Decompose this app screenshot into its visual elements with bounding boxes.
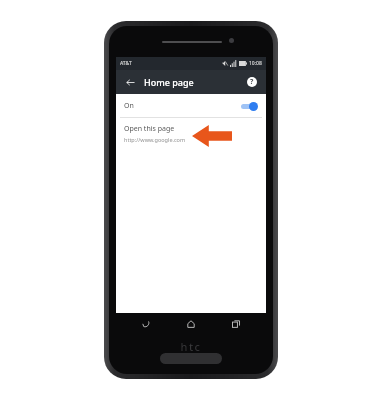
button[interactable]: Home <box>184 317 198 331</box>
button[interactable]: On <box>116 94 266 117</box>
staticText: Home page <box>144 76 194 88</box>
staticText: ? <box>250 77 254 87</box>
staticText: http://www.google.com <box>124 136 186 143</box>
button[interactable]: Recent apps <box>229 317 243 331</box>
button[interactable]: Back <box>139 317 153 331</box>
staticText: AT&T <box>120 60 132 67</box>
staticText: On <box>124 101 134 111</box>
staticText: htc <box>171 339 211 354</box>
button[interactable]: Open this page <box>116 118 266 150</box>
staticText: Open this page <box>124 124 175 134</box>
staticText: 10:08 <box>249 60 262 67</box>
button[interactable]: Help <box>245 75 259 89</box>
button[interactable]: Back <box>123 75 137 89</box>
